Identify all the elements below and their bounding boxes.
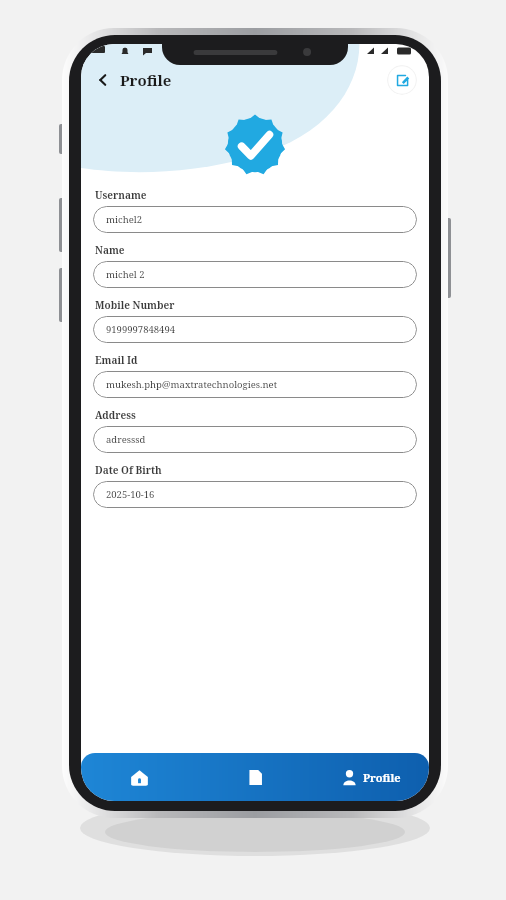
button[interactable]: Documents [197, 753, 313, 801]
button[interactable]: 2025-10-16 [93, 481, 417, 508]
staticText: 2025-10-16 [106, 488, 155, 501]
button[interactable]: mukesh.php@maxtratechnologies.net [93, 371, 417, 398]
button[interactable]: 9199997848494 [93, 316, 417, 343]
staticText: mukesh.php@maxtratechnologies.net [106, 378, 278, 391]
staticText: Name [95, 243, 125, 257]
staticText: Profile [363, 770, 401, 785]
button[interactable]: Home [81, 753, 197, 801]
staticText: Mobile Number [95, 298, 175, 312]
staticText: Username [95, 188, 147, 202]
button[interactable]: Edit profile [387, 65, 417, 95]
staticText: 9199997848494 [106, 323, 176, 336]
button[interactable]: michel 2 [93, 261, 417, 288]
button[interactable]: michel2 [93, 206, 417, 233]
staticText: Address [95, 408, 136, 422]
staticText: adresssd [106, 433, 146, 446]
staticText: michel2 [106, 213, 143, 226]
button[interactable]: adresssd [93, 426, 417, 453]
staticText: michel 2 [106, 268, 145, 281]
button[interactable]: Profile [91, 66, 176, 94]
staticText: Profile [120, 70, 172, 90]
staticText: Email Id [95, 353, 138, 367]
staticText: Date Of Birth [95, 463, 162, 477]
button[interactable]: Profile [313, 753, 429, 801]
